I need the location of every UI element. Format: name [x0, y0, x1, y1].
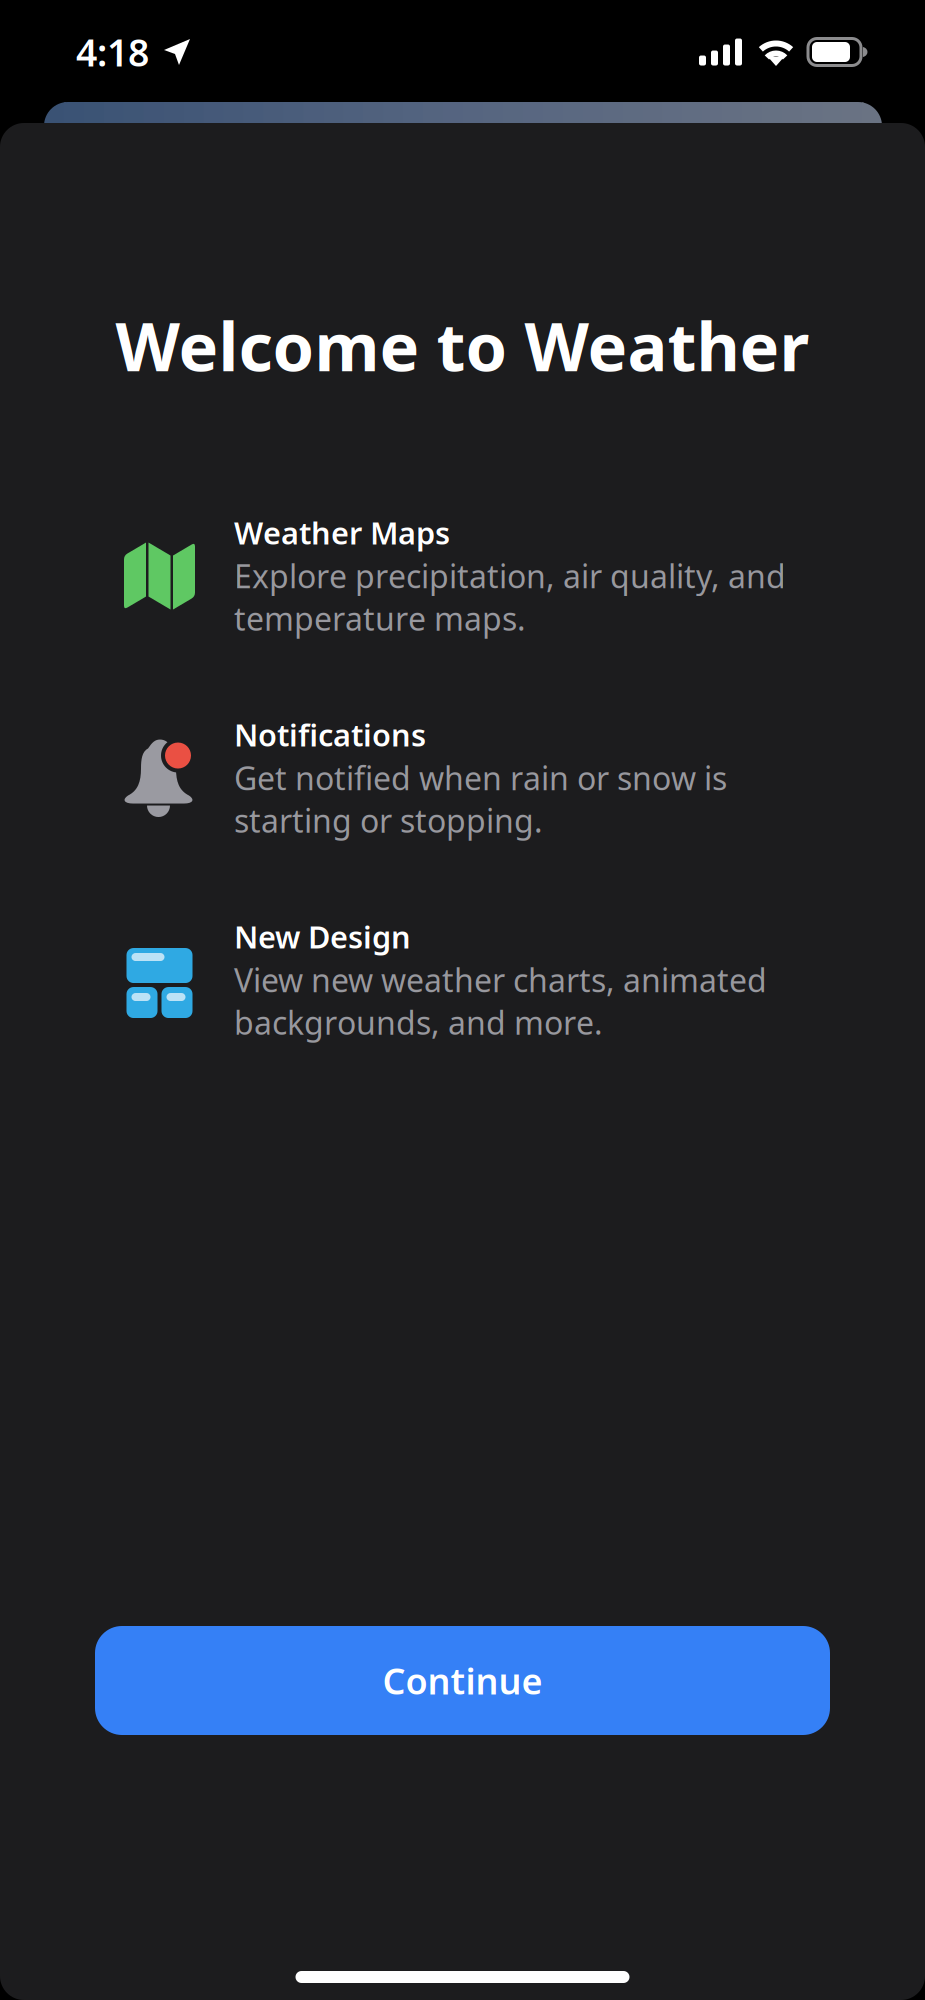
- staticText: View new weather charts, animated backgr…: [234, 958, 767, 1043]
- staticText: Notifications: [234, 714, 426, 755]
- staticText: Weather Maps: [234, 512, 450, 553]
- staticText: Get notified when rain or snow is starti…: [234, 756, 727, 841]
- staticText: Welcome to Weather: [115, 301, 809, 389]
- button[interactable]: Continue: [95, 1626, 830, 1735]
- staticText: 4:18: [76, 27, 149, 77]
- staticText: New Design: [234, 916, 411, 957]
- staticText: Continue: [382, 1657, 542, 1704]
- staticText: Explore precipitation, air quality, and …: [234, 554, 786, 639]
